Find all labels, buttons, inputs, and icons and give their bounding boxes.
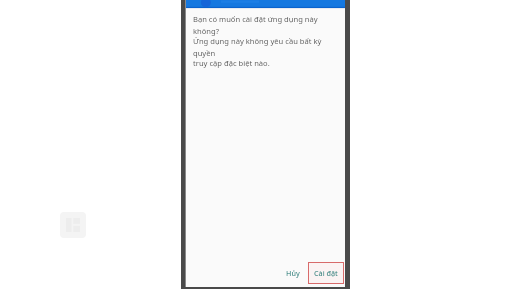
staticText: Hủy (286, 268, 300, 278)
staticText: Bạn có muốn cài đặt ứng dụng này không? (193, 14, 339, 36)
staticText: Ứng dụng này không yêu cầu bất kỳ quyền (193, 36, 339, 58)
button[interactable]: Hủy (280, 263, 306, 283)
button[interactable]: Cài đặt (308, 262, 344, 284)
staticText: truy cập đặc biệt nào. (193, 58, 270, 68)
staticText: Cài đặt (314, 268, 338, 278)
